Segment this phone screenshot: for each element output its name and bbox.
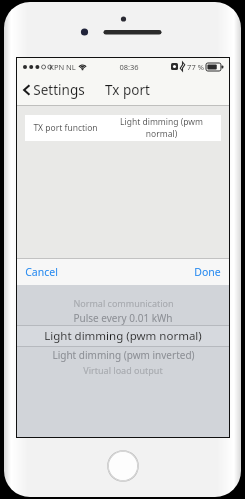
button[interactable]: Done bbox=[186, 260, 229, 284]
staticText: Settings bbox=[33, 81, 85, 99]
button[interactable]: TX port function bbox=[25, 115, 221, 141]
staticText: Cancel bbox=[25, 265, 58, 279]
button[interactable]: Light dimming (pwm normal) bbox=[17, 326, 229, 346]
staticText: Virtual load output bbox=[83, 364, 163, 376]
staticText: Done bbox=[194, 265, 221, 279]
staticText: Tx port bbox=[105, 81, 150, 99]
staticText: Normal communication bbox=[73, 297, 174, 309]
button[interactable]: Normal communication bbox=[17, 295, 229, 310]
staticText: Pulse every 0.01 kWh bbox=[73, 311, 173, 325]
staticText: Light dimming (pwm normal) bbox=[44, 328, 202, 344]
staticText: Light dimming (pwm normal) bbox=[110, 116, 213, 140]
button[interactable]: Virtual load output bbox=[17, 362, 229, 377]
staticText: 08:36 bbox=[119, 62, 139, 72]
button[interactable]: Home bbox=[107, 450, 139, 482]
staticText: TX port function bbox=[33, 122, 98, 134]
button[interactable]: Pulse every 0.01 kWh bbox=[17, 310, 229, 325]
staticText: 77 % bbox=[187, 62, 204, 72]
button[interactable]: Settings bbox=[17, 77, 93, 103]
button[interactable]: Light dimming (pwm inverted) bbox=[17, 347, 229, 362]
staticText: KPN NL bbox=[49, 62, 76, 72]
button[interactable]: Cancel bbox=[17, 260, 66, 284]
staticText: Light dimming (pwm inverted) bbox=[52, 348, 195, 362]
